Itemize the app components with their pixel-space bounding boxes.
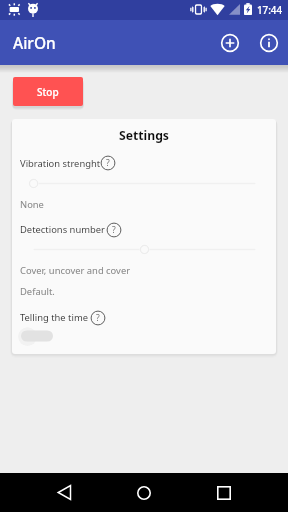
staticText: Stop (37, 85, 59, 99)
staticText: Vibration strenght (20, 157, 101, 170)
staticText: ? (106, 157, 110, 169)
button[interactable]: Help about Vibration strenght (99, 154, 117, 172)
staticText: AirOn (13, 32, 56, 53)
staticText: ? (112, 224, 116, 236)
button[interactable]: Add (214, 27, 246, 59)
button[interactable]: Info (253, 27, 285, 59)
button[interactable]: Help about Detections number (105, 221, 123, 239)
staticText: Detections number (20, 223, 105, 236)
button[interactable]: Help about Telling the time (89, 309, 107, 327)
button[interactable]: Home (124, 473, 164, 512)
staticText: 17:44 (257, 4, 283, 17)
staticText: Cover, uncover and cover (20, 264, 131, 277)
staticText: Telling the time (20, 311, 88, 324)
staticText: None (20, 198, 44, 211)
staticText: Default. (20, 285, 55, 298)
staticText: ? (96, 312, 100, 324)
button[interactable]: Telling the time switch (21, 328, 53, 344)
button[interactable]: Back (44, 473, 84, 512)
staticText: Settings (12, 127, 276, 144)
button[interactable]: Recents (204, 473, 244, 512)
button[interactable]: Stop (13, 77, 83, 106)
